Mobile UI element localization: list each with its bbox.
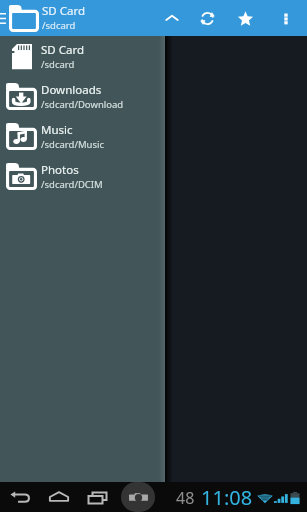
button[interactable]: Camera (117, 482, 158, 512)
staticText: SD Card (42, 3, 86, 19)
button[interactable]: Current folder (9, 4, 39, 32)
staticText: 48 (176, 487, 195, 509)
button[interactable]: Recents (78, 482, 117, 512)
staticText: /sdcard/Music (41, 138, 104, 151)
staticText: SD Card (41, 42, 85, 58)
button[interactable]: Photos (0, 156, 165, 196)
button[interactable]: Open navigation drawer (0, 0, 9, 36)
button[interactable]: Music (0, 116, 165, 156)
staticText: /sdcard/DCIM (41, 178, 103, 191)
staticText: /sdcard/Download (41, 98, 124, 111)
button[interactable]: Home (40, 482, 78, 512)
button[interactable]: Back (0, 482, 40, 512)
button[interactable]: Refresh (188, 0, 226, 36)
button[interactable]: Favorite (226, 0, 264, 36)
staticText: /sdcard (42, 19, 76, 32)
staticText: Downloads (41, 82, 102, 98)
button[interactable]: More options (264, 0, 307, 36)
staticText: Music (41, 122, 73, 138)
staticText: 11:08 (201, 484, 253, 511)
button[interactable]: Downloads (0, 76, 165, 116)
button[interactable]: SD Card (0, 36, 165, 76)
staticText: /sdcard (41, 58, 75, 71)
staticText: Photos (41, 162, 79, 178)
button[interactable]: Collapse (155, 0, 188, 36)
